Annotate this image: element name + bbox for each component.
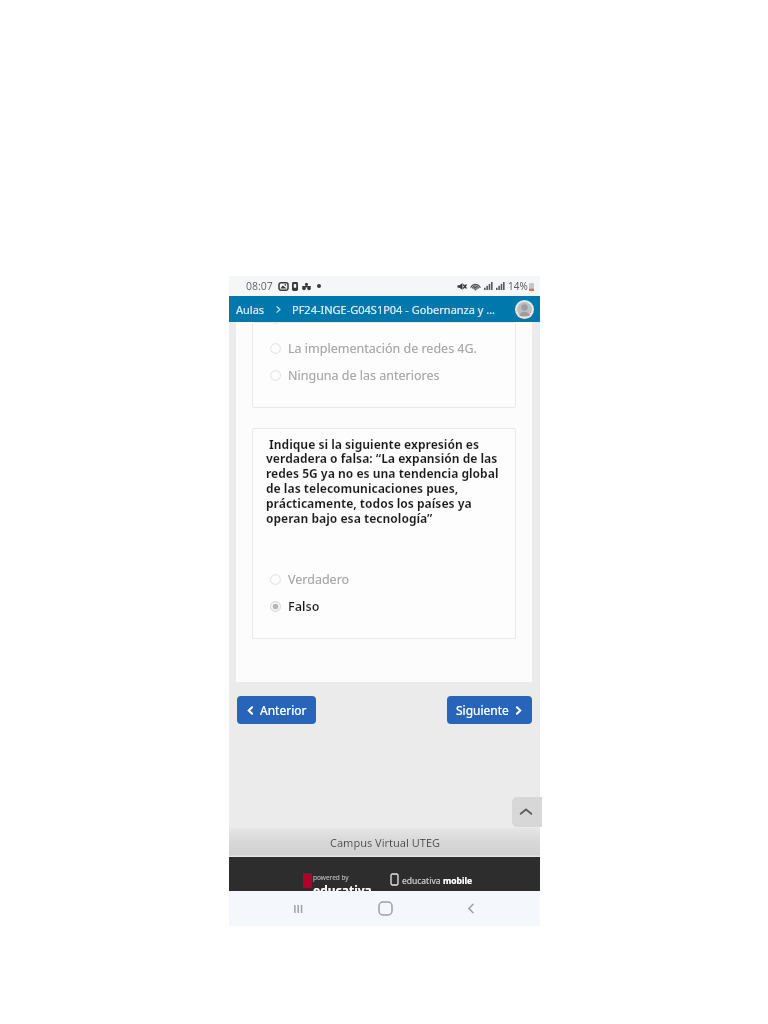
staticText: Falso xyxy=(288,598,320,615)
staticText: 14% xyxy=(508,279,528,293)
button[interactable]: Falso xyxy=(270,598,320,615)
button[interactable]: Verdadero xyxy=(270,571,350,588)
staticText: Indique si la siguiente expresión es ver… xyxy=(266,436,510,527)
button[interactable]: Siguiente xyxy=(447,696,532,724)
staticText: Campus Virtual UTEG xyxy=(330,835,440,850)
staticText: Aulas xyxy=(236,302,265,317)
staticText: Ninguna de las anteriores xyxy=(288,367,440,384)
staticText: Anterior xyxy=(260,702,307,718)
staticText: mobile xyxy=(443,875,473,887)
button[interactable]: Ninguna de las anteriores xyxy=(270,367,440,384)
staticText: PF24-INGE-G04S1P04 - Gobernanza y … xyxy=(292,302,495,317)
button[interactable]: La implementación de redes 4G. xyxy=(270,340,477,357)
staticText: educativa xyxy=(313,882,372,891)
button[interactable]: Inicio xyxy=(367,891,403,926)
staticText: Siguiente xyxy=(456,702,509,718)
button[interactable]: Atrás xyxy=(453,891,489,926)
button[interactable]: Volver arriba xyxy=(512,797,542,827)
staticText: La implementación de redes 4G. xyxy=(288,340,477,357)
staticText: 08:07 xyxy=(246,279,273,293)
button[interactable]: Recientes xyxy=(280,891,316,926)
button[interactable]: Perfil de usuario xyxy=(515,300,534,319)
button[interactable]: Anterior xyxy=(237,696,316,724)
button[interactable]: PF24-INGE-G04S1P04 - Gobernanza y … xyxy=(292,299,512,320)
staticText: powered by xyxy=(313,873,349,882)
staticText: educativa xyxy=(402,875,443,887)
staticText: Verdadero xyxy=(288,571,350,588)
button[interactable]: Aulas xyxy=(236,299,265,320)
